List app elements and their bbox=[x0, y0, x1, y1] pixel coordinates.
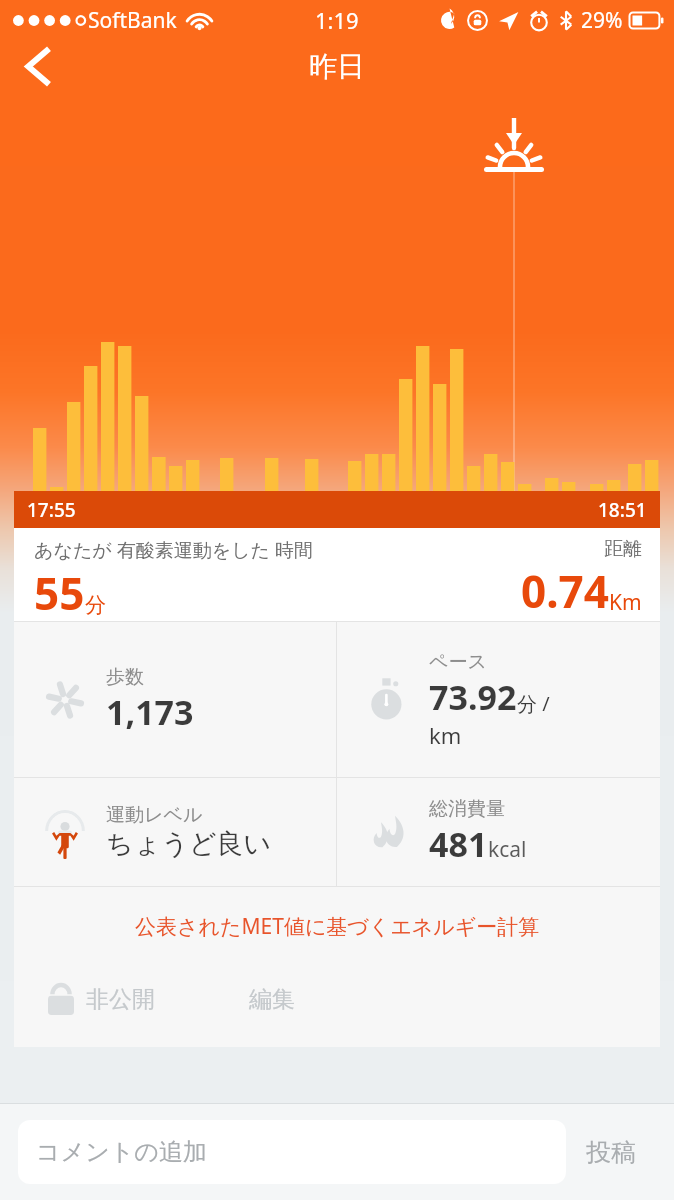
staticText: SoftBank bbox=[88, 6, 177, 35]
staticText: 73.92 bbox=[429, 674, 517, 720]
button[interactable]: 非公開 bbox=[44, 979, 159, 1019]
staticText: 17:55 bbox=[27, 497, 76, 523]
button[interactable]: Back bbox=[8, 37, 66, 95]
button[interactable]: 編集 bbox=[245, 981, 299, 1018]
staticText: 歩数 bbox=[106, 665, 144, 689]
staticText: コメントの追加 bbox=[36, 1137, 207, 1167]
staticText: ちょうど良い bbox=[106, 827, 272, 861]
staticText: 投稿 bbox=[586, 1137, 636, 1168]
staticText: 非公開 bbox=[86, 985, 155, 1014]
staticText: 18:51 bbox=[598, 497, 647, 523]
button[interactable]: 総消費量 bbox=[337, 778, 660, 886]
staticText: あなたが 有酸素運動をした 時間 bbox=[34, 537, 313, 563]
staticText: km bbox=[429, 720, 462, 750]
button[interactable]: ペース bbox=[337, 622, 660, 777]
staticText: Km bbox=[609, 588, 642, 617]
staticText: 分 / bbox=[517, 690, 550, 717]
staticText: 55 bbox=[34, 563, 85, 621]
staticText: 公表されたMET値に基づくエネルギー計算 bbox=[135, 912, 540, 941]
staticText: 1:19 bbox=[315, 5, 359, 35]
staticText: 総消費量 bbox=[429, 797, 505, 821]
staticText: 29% bbox=[581, 6, 623, 35]
staticText: 編集 bbox=[249, 985, 295, 1014]
button[interactable]: 公表されたMET値に基づくエネルギー計算 bbox=[125, 908, 550, 945]
button[interactable]: 歩数 bbox=[14, 622, 336, 777]
staticText: 昨日 bbox=[309, 49, 365, 84]
staticText: 0.74 bbox=[521, 561, 609, 621]
staticText: 1,173 bbox=[106, 689, 194, 735]
button[interactable]: コメントの追加 bbox=[18, 1120, 566, 1184]
staticText: 分 bbox=[85, 592, 106, 618]
staticText: kcal bbox=[488, 835, 527, 864]
staticText: 481 bbox=[429, 821, 488, 867]
staticText: 運動レベル bbox=[106, 803, 203, 827]
staticText: 距離 bbox=[604, 537, 642, 561]
button[interactable]: 投稿 bbox=[566, 1125, 656, 1180]
button[interactable]: 運動レベル bbox=[14, 778, 336, 886]
staticText: ペース bbox=[429, 650, 487, 674]
